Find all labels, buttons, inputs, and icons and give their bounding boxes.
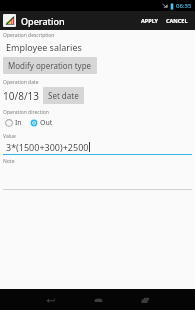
button[interactable]: 3*(1500+300)+2500 bbox=[3, 141, 192, 155]
staticText: Modify operation type bbox=[8, 60, 92, 71]
button[interactable]: Employee salaries bbox=[3, 41, 192, 54]
button[interactable]: Out bbox=[28, 116, 55, 130]
staticText: Note bbox=[3, 158, 15, 165]
button[interactable]: App icon bbox=[3, 14, 16, 27]
button[interactable]: Recent apps bbox=[137, 292, 153, 308]
button[interactable]: APPLY bbox=[137, 11, 162, 30]
staticText: Operation date bbox=[3, 79, 39, 86]
button[interactable]: Back bbox=[42, 292, 58, 308]
button[interactable]: Set date bbox=[43, 87, 84, 104]
button[interactable]: CANCEL bbox=[162, 11, 192, 30]
button[interactable]: 10/8/13 bbox=[3, 89, 40, 103]
button[interactable]: In bbox=[3, 116, 24, 130]
staticText: Operation direction bbox=[3, 109, 49, 116]
staticText: Employee salaries bbox=[6, 41, 82, 53]
staticText: APPLY bbox=[141, 17, 158, 24]
staticText: Out bbox=[40, 118, 53, 128]
staticText: 06:35 bbox=[176, 2, 192, 10]
staticText: CANCEL bbox=[166, 17, 188, 24]
staticText: In bbox=[15, 118, 22, 128]
staticText: Operation description bbox=[3, 32, 55, 39]
staticText: Operation bbox=[21, 15, 137, 27]
button[interactable] bbox=[3, 165, 192, 190]
staticText: 3*(1500+300)+2500 bbox=[6, 141, 89, 153]
staticText: Set date bbox=[48, 90, 79, 101]
button[interactable]: Home bbox=[90, 292, 106, 308]
button[interactable]: Modify operation type bbox=[3, 57, 97, 74]
staticText: Value bbox=[3, 133, 16, 140]
